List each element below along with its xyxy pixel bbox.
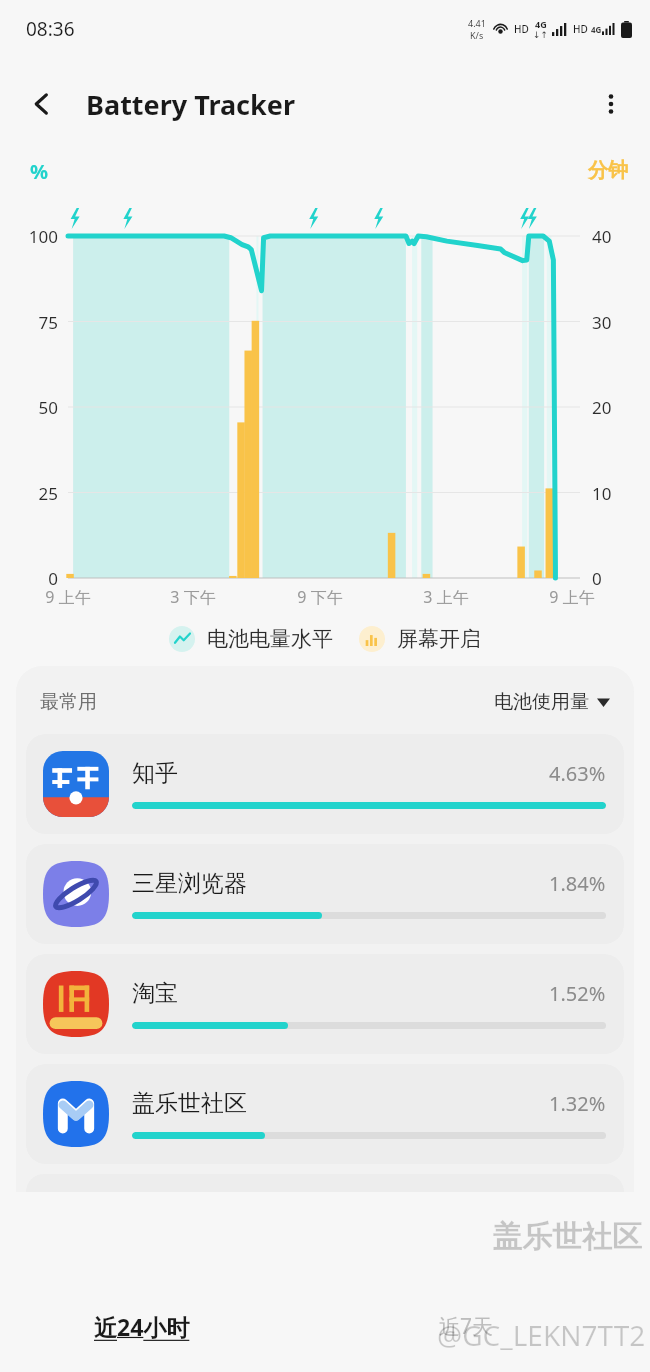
button[interactable]: 近24小时 xyxy=(88,1305,196,1348)
staticText: 9 上午 xyxy=(34,586,102,608)
staticText: 0 xyxy=(12,567,58,590)
staticText: 近24小时 xyxy=(94,1311,190,1342)
staticText: HD xyxy=(514,22,529,36)
staticText: 分钟 xyxy=(588,158,628,183)
staticText: 电池使用量 xyxy=(494,690,589,714)
staticText: 75 xyxy=(12,311,58,334)
button[interactable]: 知乎 xyxy=(26,734,624,834)
button[interactable]: 盖乐世社区 xyxy=(26,1064,624,1164)
button[interactable]: Back xyxy=(20,82,64,126)
staticText: 08:36 xyxy=(26,16,75,42)
staticText: 40 xyxy=(592,225,612,248)
staticText: 淘宝 xyxy=(132,979,178,1008)
staticText: 25 xyxy=(12,482,58,505)
staticText: K/s xyxy=(470,29,484,41)
staticText: 屏幕开启 xyxy=(397,626,481,652)
staticText: 4G xyxy=(591,24,602,35)
staticText: HD xyxy=(573,22,588,36)
staticText: 三星浏览器 xyxy=(132,869,247,898)
button[interactable]: 电池使用量 xyxy=(488,684,616,720)
staticText: 4.63% xyxy=(549,760,606,787)
staticText: Battery Tracker xyxy=(86,86,295,123)
staticText: 9 下午 xyxy=(286,586,354,608)
staticText: 电池电量水平 xyxy=(207,626,333,652)
staticText: % xyxy=(30,158,49,185)
button[interactable]: 淘宝 xyxy=(26,954,624,1054)
staticText: 最常用 xyxy=(40,690,97,714)
staticText: 0 xyxy=(592,567,602,590)
staticText: 近7天 xyxy=(439,1312,494,1341)
staticText: 4G xyxy=(535,18,547,30)
staticText: 1.32% xyxy=(549,1090,606,1117)
staticText: 4.41 xyxy=(468,17,486,29)
staticText: 盖乐世社区 xyxy=(132,1089,247,1118)
staticText: 1.84% xyxy=(549,870,606,897)
staticText: 30 xyxy=(592,311,612,334)
button[interactable]: More options xyxy=(588,81,634,127)
staticText: 3 下午 xyxy=(159,586,227,608)
button[interactable]: 三星浏览器 xyxy=(26,844,624,944)
button[interactable]: 近7天 xyxy=(433,1306,500,1347)
staticText: 盖乐世社区 xyxy=(492,1218,642,1256)
staticText: 10 xyxy=(592,482,612,505)
staticText: 9 上午 xyxy=(538,586,606,608)
staticText: ↓↑ xyxy=(533,30,549,40)
staticText: 20 xyxy=(592,396,612,419)
staticText: 1.52% xyxy=(549,980,606,1007)
staticText: 知乎 xyxy=(132,759,178,788)
staticText: 3 上午 xyxy=(412,586,480,608)
staticText: @GC_LEKN7TT2 xyxy=(437,1316,646,1354)
staticText: 100 xyxy=(12,225,58,248)
staticText: 50 xyxy=(12,396,58,419)
